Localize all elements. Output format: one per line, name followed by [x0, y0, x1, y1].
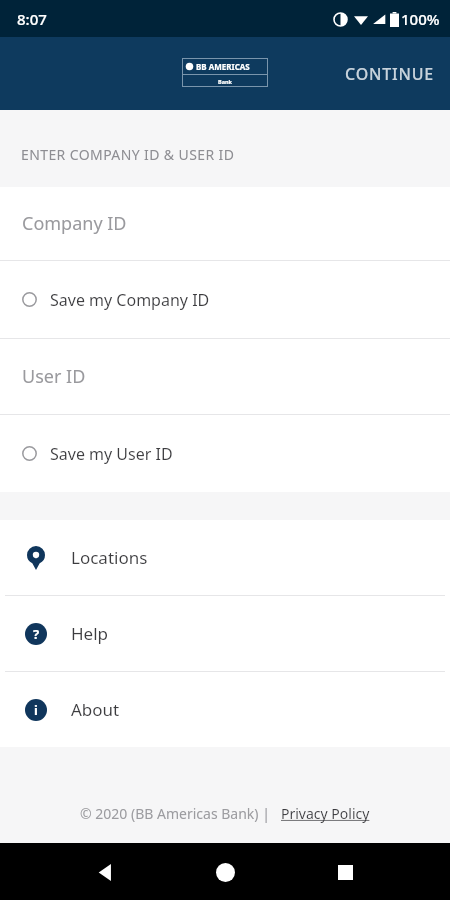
staticText: 8:07 — [17, 9, 47, 29]
staticText: ? — [33, 625, 40, 643]
staticText: i — [34, 701, 38, 719]
staticText: Save my Company ID — [50, 289, 210, 311]
button[interactable]: Back — [88, 855, 122, 889]
staticText: Bank — [218, 78, 232, 85]
button[interactable]: User ID — [0, 339, 450, 414]
staticText: BB AMERICAS — [196, 61, 250, 72]
staticText: Locations — [71, 546, 148, 569]
button[interactable]: Home — [208, 855, 242, 889]
staticText: CONTINUE — [345, 63, 434, 85]
staticText: Company ID — [22, 211, 127, 236]
button[interactable]: ? — [0, 596, 450, 671]
staticText: 100% — [401, 9, 440, 29]
staticText: © 2020 (BB Americas Bank) | — [80, 804, 270, 823]
button[interactable]: Save my User ID — [0, 415, 450, 492]
button[interactable]: Privacy Policy — [281, 804, 370, 823]
button[interactable]: Locations — [0, 520, 450, 595]
button[interactable]: Recent apps — [328, 855, 362, 889]
staticText: About — [71, 698, 120, 721]
staticText: Save my User ID — [50, 443, 173, 465]
staticText: User ID — [22, 364, 86, 389]
button[interactable]: Company ID — [0, 187, 450, 260]
staticText: ENTER COMPANY ID & USER ID — [21, 145, 235, 164]
button[interactable]: i — [0, 672, 450, 747]
staticText: Help — [71, 622, 109, 645]
button[interactable]: CONTINUE — [329, 49, 450, 99]
button[interactable]: Save my Company ID — [0, 261, 450, 338]
staticText: Privacy Policy — [281, 804, 370, 823]
button[interactable]: BB Americas Bank logo — [182, 58, 268, 87]
